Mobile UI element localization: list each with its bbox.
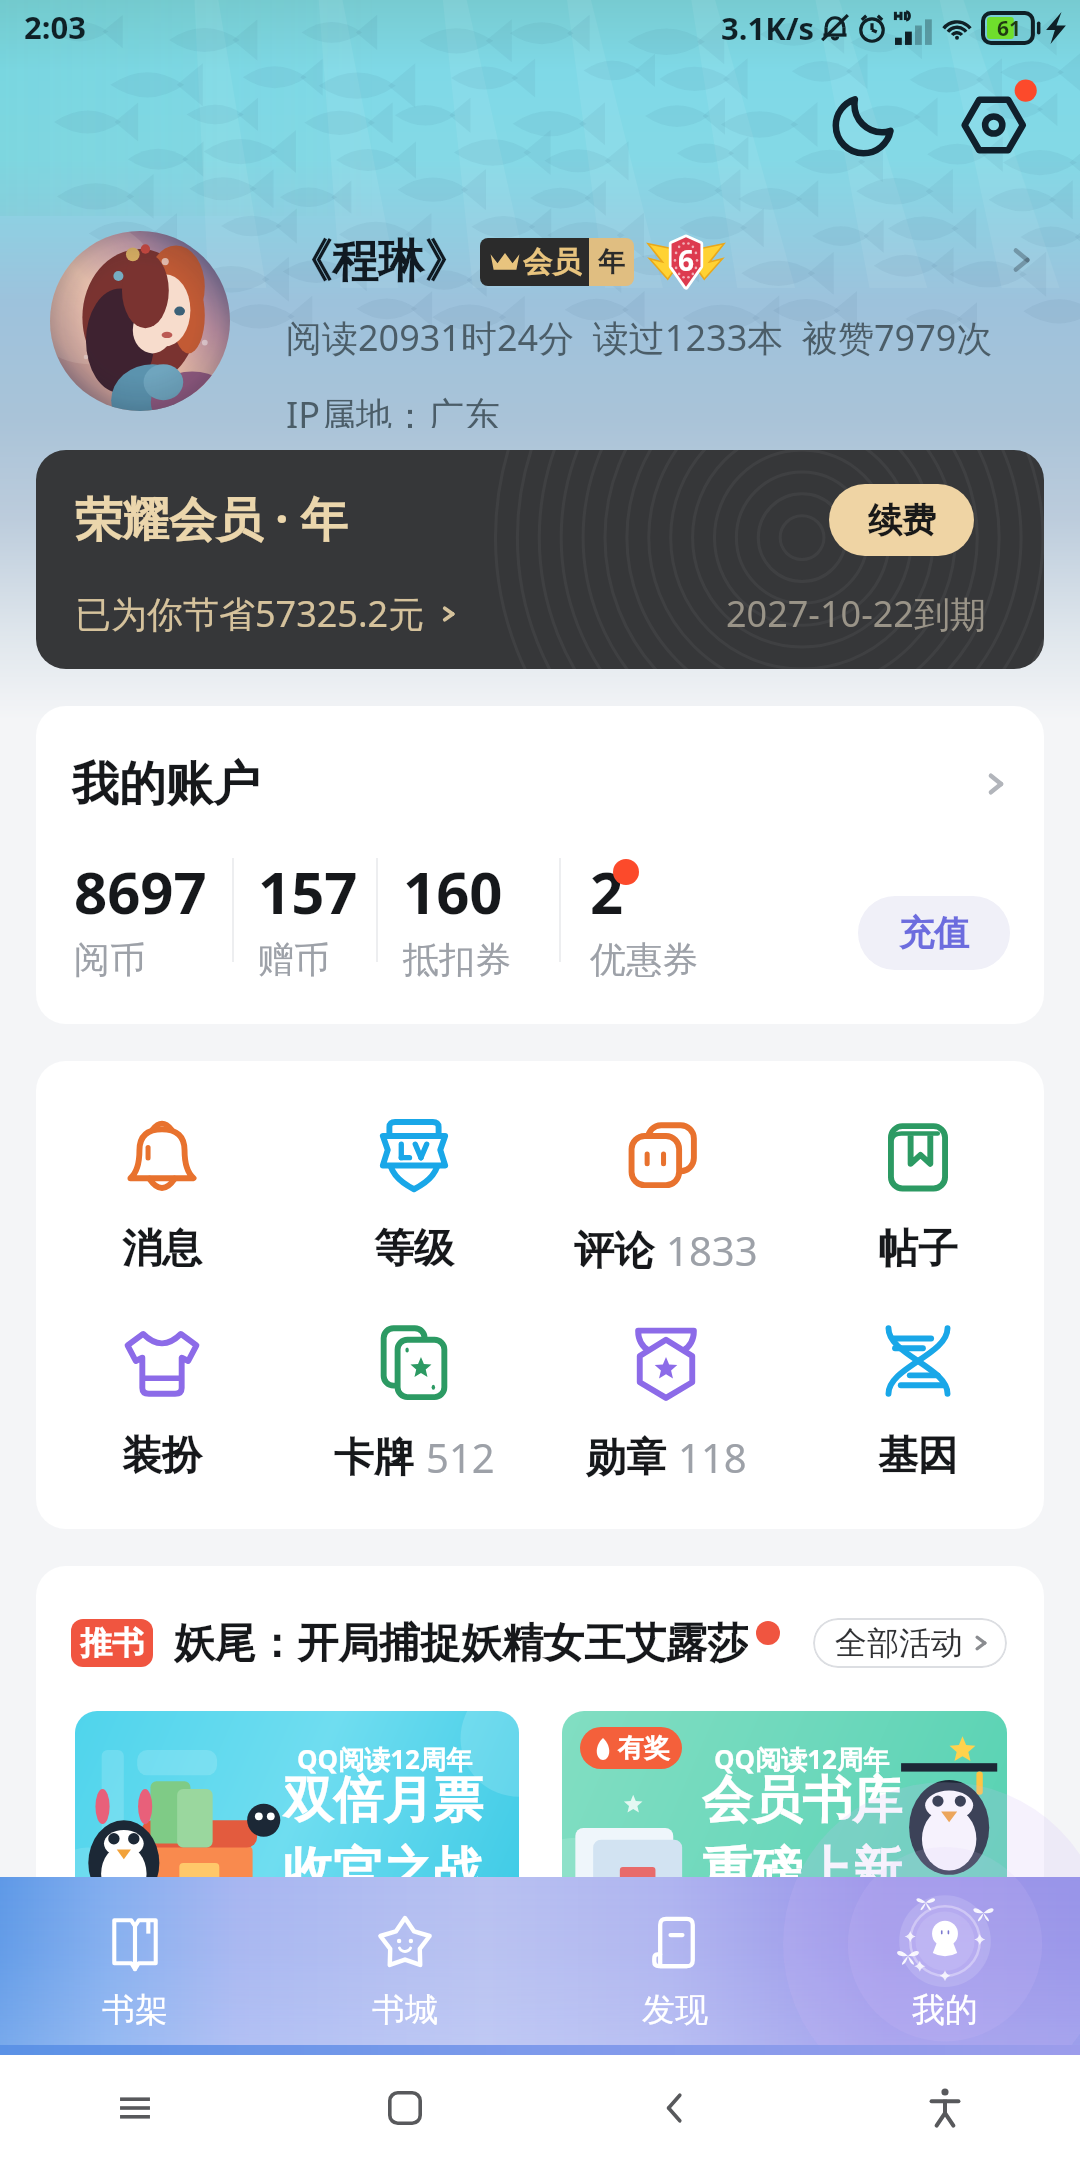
staticText: 1833 <box>666 1223 758 1277</box>
staticText: 书架 <box>102 1989 168 2031</box>
staticText: IP属地：广东 <box>286 390 500 428</box>
staticText: 评论 <box>574 1225 654 1275</box>
staticText: 2 <box>590 852 624 931</box>
button[interactable]: 装扮 <box>36 1320 288 1480</box>
button[interactable]: 卡牌 <box>288 1320 540 1484</box>
button[interactable]: 充值 <box>858 896 1010 970</box>
staticText: 全部活动 <box>835 1623 963 1663</box>
staticText: 有奖 <box>618 1732 670 1765</box>
staticText: 2:03 <box>24 6 86 48</box>
staticText: 我的 <box>912 1989 978 2031</box>
staticText: 118 <box>678 1430 747 1484</box>
button[interactable]: Back <box>635 2068 715 2148</box>
staticText: 重磅上新 <box>702 1840 902 1903</box>
button[interactable]: 续费 <box>829 484 974 556</box>
staticText: 收官之战 <box>283 1840 483 1903</box>
staticText: QQ阅读12周年 <box>714 1741 889 1777</box>
staticText: 157 <box>258 852 358 931</box>
button[interactable]: 书架 <box>0 1877 270 2045</box>
staticText: 续费 <box>868 499 936 542</box>
button[interactable]: Night mode <box>823 84 905 166</box>
staticText: 512 <box>426 1430 495 1484</box>
staticText: 2027-10-22到期 <box>726 589 986 638</box>
staticText: 会员 <box>523 244 581 281</box>
button[interactable]: QQ阅读12周年 <box>75 1711 519 1906</box>
staticText: 我的账户 <box>72 755 260 814</box>
button[interactable]: 消息 <box>36 1113 288 1273</box>
staticText: 消息 <box>122 1223 202 1273</box>
staticText: 书城 <box>372 1989 438 2031</box>
staticText: 阅币 <box>74 937 146 982</box>
button[interactable]: 我的 <box>810 1877 1080 2045</box>
staticText: 61 <box>997 14 1022 43</box>
button[interactable]: 勋章 <box>540 1320 792 1484</box>
staticText: 3.1K/s <box>721 7 815 49</box>
button[interactable]: 发现 <box>540 1877 810 2045</box>
staticText: 等级 <box>374 1223 454 1273</box>
staticText: 荣耀会员 · 年 <box>75 486 348 550</box>
staticText: 妖尾：开局捕捉妖精女王艾露莎 <box>174 1618 748 1668</box>
staticText: 基因 <box>878 1430 958 1480</box>
button[interactable]: Accessibility <box>905 2068 985 2148</box>
staticText: 赠币 <box>258 937 330 982</box>
staticText: 阅读20931时24分 读过1233本 被赞7979次 <box>286 313 993 362</box>
button[interactable]: 基因 <box>792 1320 1044 1480</box>
staticText: 卡牌 <box>334 1432 414 1482</box>
staticText: 发现 <box>642 1989 708 2031</box>
button[interactable]: 我的账户 <box>72 706 1012 862</box>
staticText: 160 <box>403 852 503 931</box>
staticText: 抵扣券 <box>403 937 511 982</box>
staticText: 充值 <box>899 911 969 955</box>
button[interactable]: 书城 <box>270 1877 540 2045</box>
staticText: 会员书库 <box>702 1769 902 1832</box>
staticText: 勋章 <box>586 1432 666 1482</box>
button[interactable]: 等级 <box>288 1113 540 1273</box>
staticText: 已为你节省57325.2元 <box>75 589 425 638</box>
button[interactable]: 评论 <box>540 1113 792 1277</box>
staticText: 8697 <box>74 852 207 931</box>
staticText: 6 <box>678 241 695 279</box>
button[interactable]: Home <box>365 2068 445 2148</box>
staticText: 《程琳》 <box>286 233 470 291</box>
button[interactable]: Recent apps <box>95 2068 175 2148</box>
button[interactable]: 《程琳》 <box>0 231 1080 426</box>
staticText: 优惠券 <box>590 937 698 982</box>
button[interactable]: Settings <box>956 84 1038 166</box>
button[interactable]: 有奖 <box>562 1711 1007 1906</box>
staticText: 帖子 <box>878 1223 958 1273</box>
staticText: 装扮 <box>122 1430 202 1480</box>
button[interactable]: 全部活动 <box>835 1618 993 1668</box>
staticText: 推书 <box>80 1623 144 1663</box>
button[interactable]: 荣耀会员 · 年 <box>36 450 1044 669</box>
button[interactable]: 帖子 <box>792 1113 1044 1273</box>
staticText: QQ阅读12周年 <box>297 1741 472 1777</box>
staticText: 双倍月票 <box>283 1769 483 1832</box>
staticText: 年 <box>598 245 625 279</box>
